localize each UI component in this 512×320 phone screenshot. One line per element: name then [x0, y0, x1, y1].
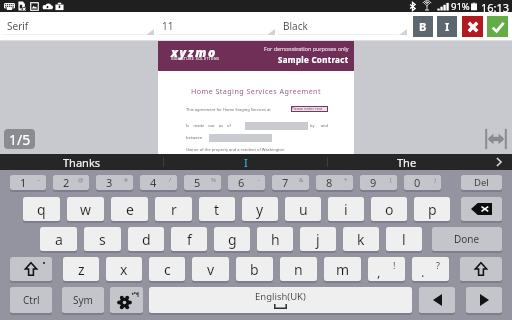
button[interactable]: z	[63, 257, 99, 283]
button[interactable]: Move left	[419, 287, 455, 315]
staticText: Black	[283, 19, 308, 33]
staticText: Is made out as of	[186, 123, 231, 128]
staticText: Sym	[73, 293, 93, 307]
button[interactable]: g	[214, 227, 250, 253]
button[interactable]: a	[40, 227, 77, 253]
button[interactable]: s	[84, 227, 121, 253]
button[interactable]: y	[242, 197, 278, 223]
button[interactable]: q	[23, 197, 60, 223]
button[interactable]: Black	[276, 12, 408, 41]
staticText: !	[393, 259, 396, 271]
staticText: Del	[474, 176, 489, 189]
button[interactable]: I	[437, 16, 457, 37]
staticText: i	[344, 200, 348, 219]
button[interactable]: Keyboard settings	[110, 287, 143, 315]
button[interactable]: I	[164, 154, 327, 170]
button[interactable]: 7	[272, 175, 309, 192]
button[interactable]: English(UK)	[149, 287, 412, 315]
button[interactable]: The	[328, 154, 486, 170]
staticText: Ctrl	[23, 293, 40, 307]
button[interactable]: 1	[10, 175, 46, 192]
button[interactable]: m	[324, 257, 361, 283]
button[interactable]: l	[386, 227, 422, 253]
button[interactable]: k	[343, 227, 379, 253]
button[interactable]: Thanks	[0, 154, 163, 170]
button[interactable]: f	[171, 227, 207, 253]
staticText: .	[421, 263, 425, 281]
button[interactable]: j	[300, 227, 336, 253]
staticText: ~	[37, 176, 41, 184]
staticText: n	[294, 260, 303, 279]
staticText: B	[419, 19, 427, 34]
staticText: y	[256, 200, 264, 219]
staticText: v	[207, 260, 215, 279]
button[interactable]: Shift	[10, 257, 52, 283]
button[interactable]: 5	[184, 175, 221, 192]
button[interactable]: o	[371, 197, 407, 223]
staticText: &	[299, 176, 304, 184]
button[interactable]: Ctrl	[10, 287, 52, 315]
staticText: s	[99, 230, 106, 249]
staticText: This agreement for Home Staging Services…	[186, 107, 271, 112]
staticText: c	[164, 260, 171, 279]
button[interactable]: B	[413, 16, 433, 37]
button[interactable]: Done	[432, 227, 502, 253]
staticText: 0	[414, 175, 421, 190]
button[interactable]: c	[149, 257, 185, 283]
staticText: 9	[370, 175, 377, 190]
staticText: f	[187, 230, 192, 249]
staticText: k	[357, 230, 365, 249]
button[interactable]: Confirm	[487, 16, 508, 37]
button[interactable]: t	[199, 197, 235, 223]
button[interactable]: n	[280, 257, 317, 283]
button[interactable]: v	[192, 257, 229, 283]
button[interactable]: Serif	[0, 12, 155, 41]
button[interactable]: 2	[53, 175, 89, 192]
staticText: z	[78, 260, 85, 279]
button[interactable]: u	[285, 197, 321, 223]
button[interactable]: 6	[228, 175, 265, 192]
button[interactable]: x	[106, 257, 142, 283]
button[interactable]: r	[155, 197, 192, 223]
button[interactable]: 1/5	[4, 129, 35, 149]
button[interactable]: 8	[316, 175, 353, 192]
button[interactable]: ,	[368, 257, 405, 283]
staticText: SIGNATURE SOLUTIONS	[171, 56, 220, 61]
staticText: l	[402, 230, 406, 249]
button[interactable]: Backspace	[461, 197, 502, 223]
button[interactable]: .	[412, 257, 449, 283]
staticText: *	[344, 176, 348, 184]
button[interactable]: 3	[96, 175, 133, 192]
button[interactable]: i	[328, 197, 364, 223]
button[interactable]: Move right	[466, 287, 502, 315]
button[interactable]: b	[236, 257, 273, 283]
button[interactable]: p	[414, 197, 450, 223]
button[interactable]: 0	[404, 175, 441, 192]
button[interactable]: Please enter text here	[291, 106, 328, 112]
button[interactable]: 11	[155, 12, 276, 41]
button[interactable]: 9	[360, 175, 397, 192]
button[interactable]: Shift	[460, 257, 502, 283]
staticText: w	[80, 200, 92, 219]
staticText: j	[316, 230, 320, 249]
button[interactable]: d	[128, 227, 164, 253]
staticText: The	[397, 155, 417, 170]
button[interactable]: Fit width	[485, 128, 507, 150]
button[interactable]: 4	[140, 175, 177, 192]
button[interactable]: w	[67, 197, 104, 223]
staticText: a	[55, 230, 63, 249]
staticText: u	[299, 200, 308, 219]
staticText: 6	[238, 175, 245, 190]
staticText: p	[428, 200, 437, 219]
button[interactable]: Del	[461, 175, 502, 192]
staticText: o	[385, 200, 394, 219]
button[interactable]: e	[111, 197, 148, 223]
button[interactable]: More suggestions	[486, 154, 512, 170]
staticText: For demonstration purposes only	[264, 45, 349, 52]
staticText: Home Staging Services Agreement	[158, 86, 354, 96]
staticText: 11	[162, 19, 174, 33]
button[interactable]: Sym	[62, 287, 104, 315]
staticText: h	[271, 230, 280, 249]
button[interactable]: h	[257, 227, 293, 253]
button[interactable]: Cancel	[462, 16, 483, 37]
